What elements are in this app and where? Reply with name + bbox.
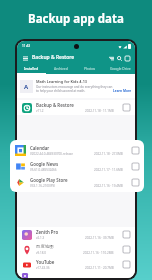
staticText: A (24, 83, 29, 91)
staticText: 2022-11-17 · 11.6MB (94, 168, 123, 172)
button[interactable]: Select app (123, 261, 130, 268)
button[interactable]: Select app (132, 179, 139, 186)
button[interactable]: Select app (123, 231, 130, 238)
button[interactable]: Google News (10, 158, 144, 174)
button[interactable]: Select app (132, 163, 139, 170)
staticText: V2022.44.0-484930700-release (30, 152, 73, 156)
staticText: YouTube (36, 259, 55, 265)
staticText: Archived (54, 66, 68, 71)
staticText: v9.18.0 (36, 251, 46, 255)
staticText: Zenith Pro (36, 229, 59, 235)
staticText: 2022-11-16 · 39.7MB (85, 236, 114, 240)
staticText: Backup & Restore (32, 54, 75, 61)
button[interactable]: YouTube (17, 257, 135, 272)
button[interactable]: Select app (132, 147, 139, 154)
button[interactable]: Select all (123, 54, 131, 62)
staticText: Calendar (30, 145, 50, 151)
staticText: 百度地图 (36, 244, 54, 250)
staticText: Google Drive (110, 66, 131, 71)
staticText: Backup & Restore (36, 102, 74, 108)
button[interactable]: Select app (123, 246, 130, 253)
staticText: v11.2 (36, 109, 44, 113)
button[interactable]: Archived (46, 64, 75, 73)
staticText: v17.43.36 (36, 266, 50, 270)
staticText: 11:43 (22, 44, 31, 48)
staticText: 2022-11-11 · 20.7MB (85, 266, 114, 270)
button[interactable]: Photos (75, 64, 105, 73)
staticText: 2022-11-18 · 11.1MB (85, 109, 114, 113)
staticText: V5.61.0.485532466 (30, 168, 57, 172)
button[interactable]: Installed (17, 64, 46, 73)
button[interactable]: Google Play Store (10, 174, 144, 190)
button[interactable]: Zenith Pro (17, 227, 135, 242)
staticText: Photos (84, 66, 96, 71)
staticText: to help your child succeed at math. (36, 89, 86, 93)
button[interactable]: A (17, 74, 135, 98)
button[interactable]: Menu (21, 54, 29, 62)
staticText: Google News (30, 161, 59, 167)
staticText: 2022-11-16 · 110.2MB (83, 251, 114, 255)
staticText: 2022-11-18 · 27.0MB (94, 152, 123, 156)
button[interactable]: 百度地图 (17, 242, 135, 257)
staticText: Math Learning for Kids 4-13 (36, 79, 88, 84)
staticText: V33.1.16-21(0)(PS) (30, 184, 56, 188)
staticText: Installed (24, 66, 39, 71)
button[interactable]: Backup & Restore (17, 100, 135, 115)
button[interactable]: Google Drive (105, 64, 135, 73)
button[interactable]: Search (115, 54, 123, 62)
staticText: Backup app data (28, 11, 124, 27)
staticText: 2022-11-16 · 19.4MB (94, 184, 123, 188)
button[interactable]: Sort (107, 54, 115, 62)
staticText: Our instructors encourage and do everyth… (36, 85, 113, 89)
staticText: v2.1.3 (36, 236, 45, 240)
staticText: Learn More (113, 89, 132, 93)
button[interactable]: Calendar (10, 142, 144, 158)
staticText: Google Play Store (30, 177, 68, 183)
button[interactable]: Select app (123, 104, 130, 111)
